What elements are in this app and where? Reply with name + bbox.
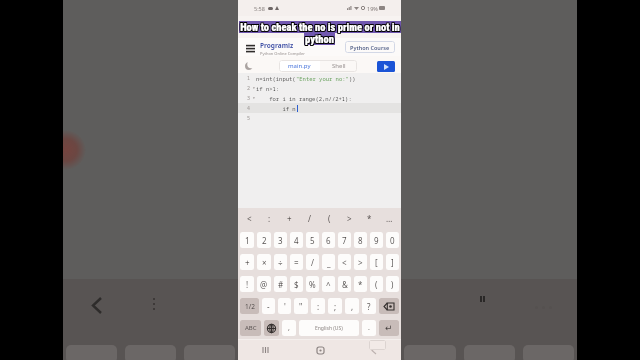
button[interactable]: = <box>290 254 303 270</box>
button[interactable]: : <box>311 298 325 314</box>
staticText: n=int(input( <box>256 75 296 82</box>
staticText: … <box>386 213 393 224</box>
button[interactable]: ÷ <box>274 254 287 270</box>
staticText: 5:58 <box>254 5 265 12</box>
button[interactable]: & <box>338 276 351 292</box>
staticText: > <box>347 213 352 224</box>
button[interactable]: … <box>379 208 399 229</box>
button[interactable]: + <box>279 208 299 229</box>
button[interactable]: : <box>259 208 279 229</box>
button[interactable]: / <box>299 208 319 229</box>
button[interactable]: , <box>345 298 359 314</box>
button[interactable]: 9 <box>370 232 383 248</box>
button[interactable]: Back <box>86 294 108 316</box>
button[interactable]: Shell <box>320 60 357 72</box>
button[interactable]: 5 <box>306 232 319 248</box>
staticText: , <box>288 323 290 333</box>
button[interactable]: Python Course <box>345 41 395 53</box>
button[interactable]: $ <box>290 276 303 292</box>
button[interactable]: - <box>262 298 275 314</box>
button[interactable]: Menu <box>242 40 258 56</box>
button[interactable]: Dark mode <box>242 59 255 72</box>
button[interactable]: Back <box>347 340 401 360</box>
staticText: # <box>278 279 284 290</box>
staticText: 3 <box>247 95 251 102</box>
button[interactable]: [ <box>370 254 383 270</box>
staticText: "Enter your no:" <box>296 75 349 82</box>
staticText: Python Online Compiler <box>260 51 305 56</box>
button[interactable]: + <box>240 254 254 270</box>
staticText: How to cheak the no is prime or not in <box>239 22 399 34</box>
staticText: ? <box>367 301 371 312</box>
staticText: How to cheak the no is prime or not in <box>239 20 399 32</box>
staticText: )) <box>349 75 356 82</box>
button[interactable]: . <box>362 320 376 336</box>
staticText: _ <box>327 257 331 268</box>
staticText: / <box>308 213 311 224</box>
button[interactable]: ] <box>386 254 399 270</box>
button[interactable]: Backspace <box>379 298 399 314</box>
button[interactable]: ( <box>370 276 383 292</box>
button[interactable]: / <box>306 254 319 270</box>
staticText: python <box>305 32 334 44</box>
button[interactable]: 6 <box>322 232 335 248</box>
button[interactable]: 8 <box>354 232 367 248</box>
button[interactable]: Enter <box>379 320 399 336</box>
button[interactable]: English (US) <box>299 320 359 336</box>
button[interactable]: 2 <box>257 232 271 248</box>
staticText: 1 <box>247 75 251 82</box>
button[interactable]: _ <box>322 254 335 270</box>
button[interactable]: % <box>306 276 319 292</box>
staticText: Python Course <box>350 44 390 51</box>
staticText: 1/2 <box>245 302 255 311</box>
button[interactable]: * <box>359 208 379 229</box>
button[interactable]: ) <box>386 276 399 292</box>
staticText: ▾ <box>253 96 255 100</box>
button[interactable]: main.py <box>279 60 320 72</box>
button[interactable]: @ <box>257 276 271 292</box>
button[interactable]: 1/2 <box>240 298 259 314</box>
button[interactable]: * <box>354 276 367 292</box>
button[interactable]: Recents <box>238 340 293 360</box>
button[interactable]: ? <box>362 298 376 314</box>
button[interactable]: Run <box>377 61 395 72</box>
staticText: if n>1: <box>256 85 280 92</box>
button[interactable]: Change language <box>264 320 279 336</box>
button[interactable]: More options <box>153 298 155 310</box>
button[interactable]: , <box>282 320 296 336</box>
staticText: python <box>306 34 335 46</box>
button[interactable]: 1 <box>240 232 254 248</box>
button[interactable]: 7 <box>338 232 351 248</box>
button[interactable]: × <box>257 254 271 270</box>
button[interactable]: ; <box>328 298 342 314</box>
staticText: * <box>367 213 372 224</box>
button[interactable]: 3 <box>274 232 287 248</box>
staticText: Programiz <box>260 41 294 50</box>
button[interactable]: ^ <box>322 276 335 292</box>
button[interactable]: # <box>274 276 287 292</box>
button[interactable]: 4 <box>290 232 303 248</box>
button[interactable]: ' <box>278 298 291 314</box>
button[interactable]: ! <box>240 276 254 292</box>
button[interactable]: ABC <box>240 320 261 336</box>
staticText: 1 <box>245 235 250 246</box>
staticText: & <box>342 279 348 290</box>
staticText: × <box>262 257 267 268</box>
staticText: , <box>351 301 354 312</box>
button[interactable]: < <box>338 254 351 270</box>
button[interactable]: " <box>294 298 308 314</box>
button[interactable]: ( <box>319 208 339 229</box>
button[interactable]: Home <box>293 340 347 360</box>
staticText: How to cheak the no is prime or not in <box>241 21 401 33</box>
button[interactable]: 0 <box>386 232 399 248</box>
button[interactable]: > <box>339 208 359 229</box>
button[interactable]: Pause <box>475 292 489 306</box>
staticText: @ <box>260 279 268 290</box>
staticText: 4 <box>247 105 251 112</box>
staticText: [ <box>375 257 378 268</box>
staticText: * <box>358 279 363 290</box>
button[interactable]: > <box>354 254 367 270</box>
staticText: + <box>287 213 292 224</box>
staticText: How to cheak the no is prime or not in <box>240 22 400 34</box>
button[interactable]: < <box>240 208 259 229</box>
